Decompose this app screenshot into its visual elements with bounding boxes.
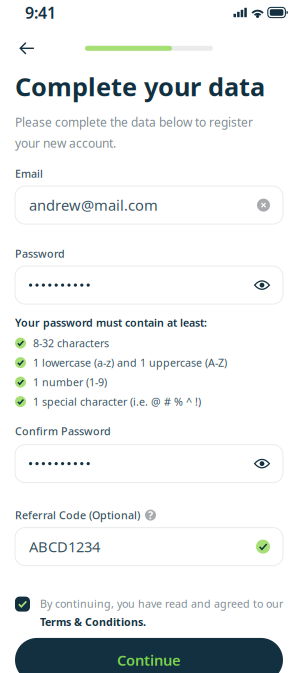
staticText: 1 number (1-9) — [33, 375, 107, 389]
staticText: andrew@mail.com — [29, 195, 158, 215]
staticText: ? — [148, 508, 153, 522]
staticText: 1 lowercase (a-z) and 1 uppercase (A-Z) — [33, 355, 227, 370]
staticText: 9:41 — [25, 2, 56, 23]
button[interactable]: Back — [14, 37, 39, 60]
button[interactable]: Continue — [15, 638, 283, 673]
staticText: Your password must contain at least: — [15, 315, 207, 330]
staticText: Password — [15, 246, 65, 261]
staticText: Referral Code (Optional) — [15, 508, 140, 522]
staticText: Complete your data — [15, 70, 265, 103]
staticText: Continue — [117, 650, 181, 670]
staticText: your new account. — [15, 135, 116, 151]
staticText: Terms & Conditions. — [40, 615, 146, 629]
staticText: 8-32 characters — [33, 336, 109, 350]
staticText: 1 special character (i.e. @ # % ^ !) — [33, 394, 201, 409]
staticText: ABCD1234 — [29, 537, 100, 556]
staticText: Please complete the data below to regist… — [15, 114, 253, 130]
staticText: Confirm Password — [15, 424, 111, 438]
staticText: By continuing, you have read and agreed … — [40, 597, 283, 611]
staticText: Email — [15, 166, 43, 181]
